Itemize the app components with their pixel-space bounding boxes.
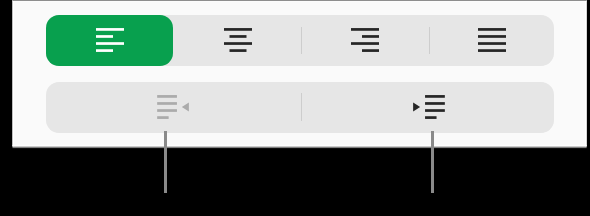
button[interactable]: Align center [173, 15, 302, 66]
button[interactable]: Decrease indent [46, 82, 301, 133]
button[interactable]: Align left [46, 15, 173, 66]
button[interactable]: Increase indent [301, 82, 554, 133]
button[interactable]: Align right [301, 15, 429, 66]
button[interactable]: Justify [429, 15, 554, 66]
